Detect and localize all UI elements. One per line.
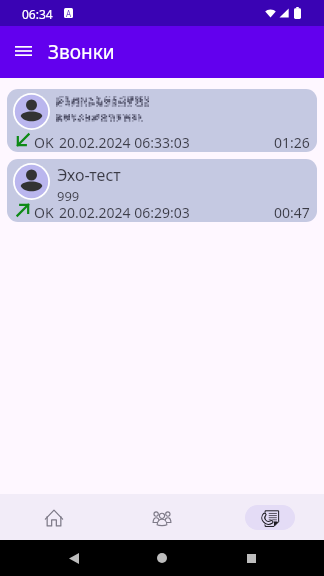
- button[interactable]: Back: [59, 543, 89, 573]
- other: Outgoing call: [16, 203, 30, 217]
- other: Incoming call: [16, 133, 30, 147]
- staticText: 20.02.2024 06:33:03: [59, 133, 190, 152]
- staticText: 01:26: [274, 133, 310, 152]
- staticText: 20.02.2024 06:29:03: [59, 203, 190, 222]
- staticText: OK: [34, 203, 54, 222]
- staticText: Эхо-тест: [57, 164, 121, 186]
- button[interactable]: Home: [147, 543, 177, 573]
- staticText: 00:47: [274, 203, 310, 222]
- button[interactable]: Contacts: [108, 494, 216, 540]
- button[interactable]: Home: [0, 494, 108, 540]
- button[interactable]: Incoming call: [7, 89, 317, 152]
- button[interactable]: Recent apps: [236, 543, 266, 573]
- staticText: A: [66, 8, 72, 18]
- staticText: OK: [34, 133, 54, 152]
- staticText: 06:34: [22, 6, 53, 22]
- staticText: Звонки: [48, 39, 115, 65]
- staticText: 999: [57, 187, 80, 205]
- button[interactable]: Open navigation menu: [6, 26, 40, 78]
- button[interactable]: Эхо-тест: [7, 159, 317, 222]
- button[interactable]: Call log: [216, 494, 324, 540]
